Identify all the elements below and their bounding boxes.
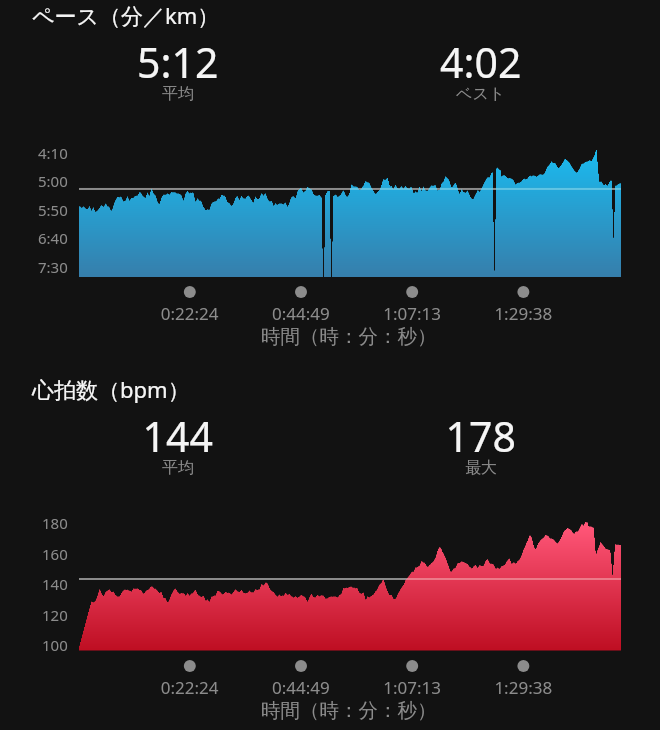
button[interactable] (0, 0, 660, 730)
